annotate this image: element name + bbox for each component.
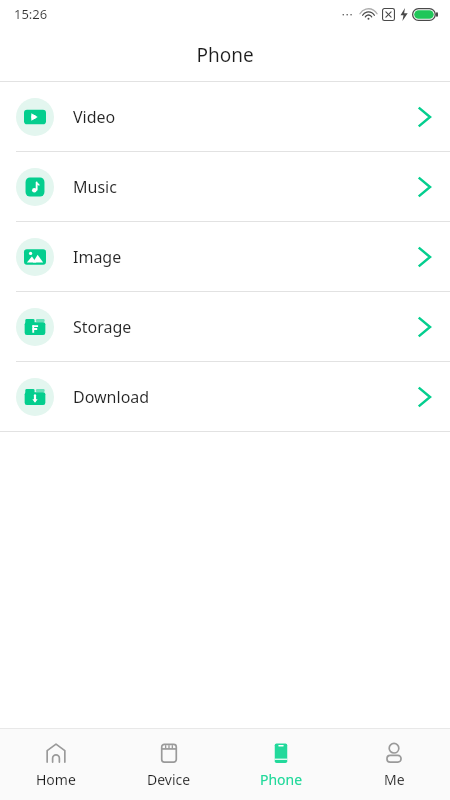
button[interactable]: Storage [0,292,450,361]
button[interactable]: Home [0,735,112,795]
staticText: Video [73,106,116,128]
staticText: Phone [260,770,303,789]
staticText: Music [73,176,117,198]
button[interactable]: Phone [225,735,337,795]
button[interactable]: Download [0,362,450,431]
button[interactable]: Image [0,222,450,291]
button[interactable]: Me [338,735,450,795]
staticText: Phone [196,42,254,68]
staticText: Me [384,770,405,789]
staticText: Storage [73,316,132,338]
staticText: Image [73,246,122,268]
staticText: Device [147,770,191,789]
button[interactable]: Video [0,82,450,151]
button[interactable]: Device [113,735,225,795]
staticText: Home [36,770,76,789]
staticText: 15:26 [14,5,48,23]
staticText: Download [73,386,150,408]
button[interactable]: Music [0,152,450,221]
